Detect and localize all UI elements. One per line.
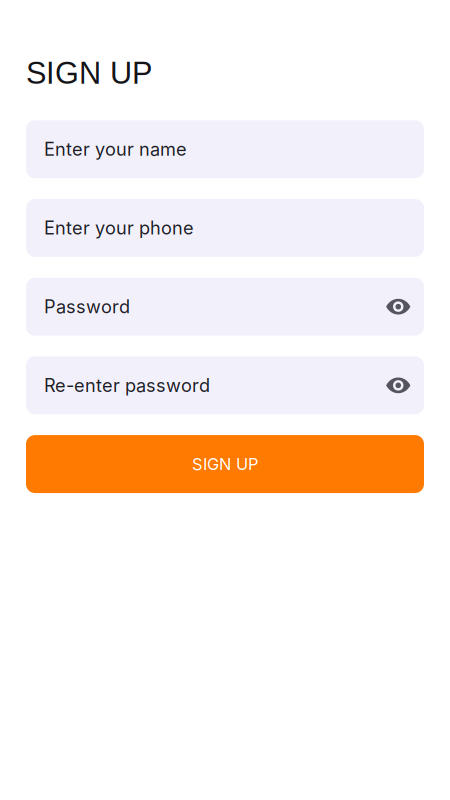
button[interactable]: Enter your phone xyxy=(26,199,424,257)
button[interactable]: SIGN UP xyxy=(26,435,424,493)
button[interactable]: Enter your name xyxy=(26,120,424,178)
staticText: Enter your phone xyxy=(44,217,194,239)
staticText: Re-enter password xyxy=(44,374,210,396)
button[interactable]: Password xyxy=(26,278,424,336)
button[interactable]: Show Password xyxy=(385,299,411,315)
button[interactable]: Re-enter password xyxy=(26,356,424,414)
staticText: Enter your name xyxy=(44,138,187,160)
button[interactable]: Show Re-enter password xyxy=(385,377,411,393)
staticText: SIGN UP xyxy=(26,56,152,90)
staticText: SIGN UP xyxy=(192,454,258,474)
staticText: Password xyxy=(44,296,130,318)
